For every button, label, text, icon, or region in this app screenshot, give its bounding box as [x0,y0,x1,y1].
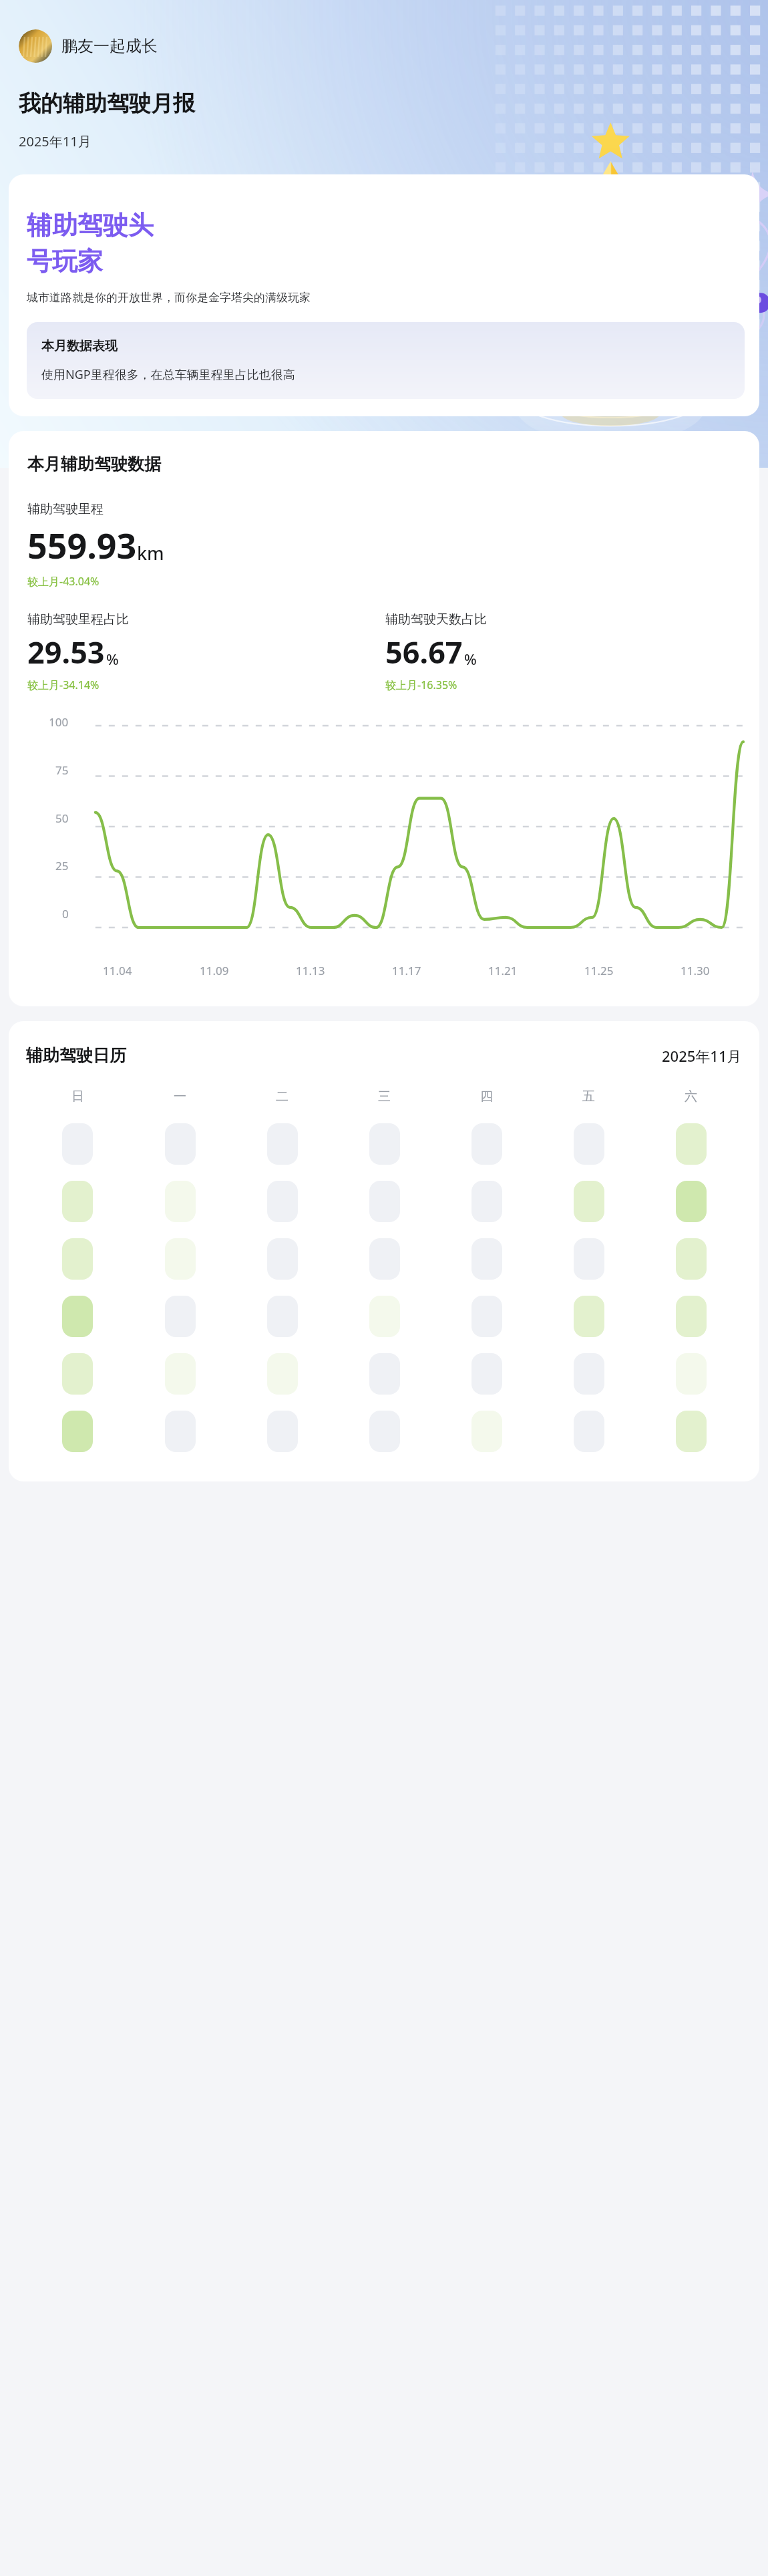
staticText: 日 [71,1089,84,1105]
button[interactable]: 日期 [267,1411,298,1452]
staticText: 辅助驾驶头 [27,209,154,241]
button[interactable]: 日期 [471,1353,502,1395]
staticText: 本月数据表现 [41,338,118,354]
button[interactable]: 日期 [165,1411,196,1452]
button[interactable]: 本月辅助驾驶数据 [9,431,759,1006]
button[interactable]: 日期 [369,1238,400,1280]
button[interactable]: 日期 [165,1296,196,1337]
staticText: 较上月-16.35% [385,678,457,692]
staticText: 0 [62,906,69,921]
staticText: 四 [480,1089,493,1105]
staticText: 三 [378,1089,391,1105]
staticText: 11.17 [392,963,421,978]
staticText: 29.53 [27,631,105,672]
staticText: 56.67 [385,631,463,672]
button[interactable]: 辅助驾驶头 [9,174,759,416]
staticText: % [106,649,119,669]
staticText: 辅助驾驶日历 [26,1045,126,1066]
button[interactable]: 日期 [676,1296,707,1337]
button[interactable]: 100 [27,716,743,984]
staticText: 11.30 [681,963,710,978]
staticText: 2025年11月 [19,132,91,150]
staticText: 11.04 [103,963,132,978]
button[interactable]: 日期 [62,1123,93,1165]
button[interactable]: 日期 [471,1238,502,1280]
button[interactable]: 日期 [62,1296,93,1337]
button[interactable]: 日期 [574,1411,604,1452]
button[interactable]: 日期 [369,1181,400,1222]
staticText: 11.25 [584,963,614,978]
button[interactable]: 日期 [471,1411,502,1452]
button[interactable]: 辅助驾驶日历 [9,1021,759,1481]
button[interactable]: 本月数据表现 [27,322,745,399]
staticText: 本月辅助驾驶数据 [27,454,161,474]
staticText: 五 [582,1089,595,1105]
staticText: 我的辅助驾驶月报 [19,90,195,118]
button[interactable]: 日期 [369,1411,400,1452]
staticText: km [137,541,164,565]
button[interactable]: 日期 [267,1238,298,1280]
staticText: 较上月-43.04% [27,574,100,589]
staticText: % [464,649,477,669]
staticText: 六 [685,1089,697,1105]
button[interactable]: 日期 [369,1296,400,1337]
button[interactable]: 日期 [369,1353,400,1395]
button[interactable]: 日期 [676,1353,707,1395]
button[interactable]: 日期 [676,1123,707,1165]
staticText: 559.93 [27,521,137,569]
button[interactable]: 日期 [267,1296,298,1337]
button[interactable]: 日期 [676,1181,707,1222]
button[interactable]: 辅助驾驶天数占比 [385,611,743,692]
button[interactable]: 日期 [62,1411,93,1452]
button[interactable]: 日期 [574,1353,604,1395]
staticText: 一 [174,1089,186,1105]
button[interactable]: 日期 [165,1238,196,1280]
staticText: 11.21 [488,963,518,978]
staticText: 11.09 [200,963,229,978]
staticText: 75 [55,762,69,778]
button[interactable]: 日期 [165,1353,196,1395]
button[interactable]: 日期 [574,1238,604,1280]
staticText: 100 [49,714,69,730]
button[interactable]: 日期 [267,1181,298,1222]
staticText: 辅助驾驶里程占比 [27,611,129,627]
button[interactable]: 日期 [267,1353,298,1395]
button[interactable]: 日期 [574,1296,604,1337]
button[interactable]: 日期 [676,1238,707,1280]
staticText: 二 [276,1089,289,1105]
staticText: 较上月-34.14% [27,678,100,692]
staticText: 25 [55,858,69,873]
button[interactable]: 日期 [471,1123,502,1165]
staticText: 号玩家 [27,245,103,277]
button[interactable]: 日期 [165,1123,196,1165]
button[interactable]: 日期 [574,1123,604,1165]
button[interactable]: 日期 [574,1181,604,1222]
staticText: 2025年11月 [662,1046,742,1066]
staticText: 城市道路就是你的开放世界，而你是金字塔尖的满级玩家 [27,291,311,305]
button[interactable]: 日期 [267,1123,298,1165]
button[interactable]: 日期 [62,1353,93,1395]
staticText: 11.13 [296,963,325,978]
button[interactable]: 日期 [471,1181,502,1222]
staticText: 辅助驾驶天数占比 [385,611,487,627]
button[interactable]: 日期 [165,1181,196,1222]
staticText: 50 [55,811,69,826]
staticText: 使用NGP里程很多，在总车辆里程里占比也很高 [41,366,295,383]
button[interactable]: 鹏友一起成长 [19,29,167,63]
staticText: 辅助驾驶里程 [27,501,104,517]
button[interactable]: 日期 [62,1238,93,1280]
button[interactable]: 辅助驾驶里程占比 [27,611,385,692]
button[interactable]: 日期 [62,1181,93,1222]
button[interactable]: 日期 [676,1411,707,1452]
button[interactable]: 日期 [471,1296,502,1337]
staticText: 鹏友一起成长 [61,36,158,56]
button[interactable]: 日期 [369,1123,400,1165]
